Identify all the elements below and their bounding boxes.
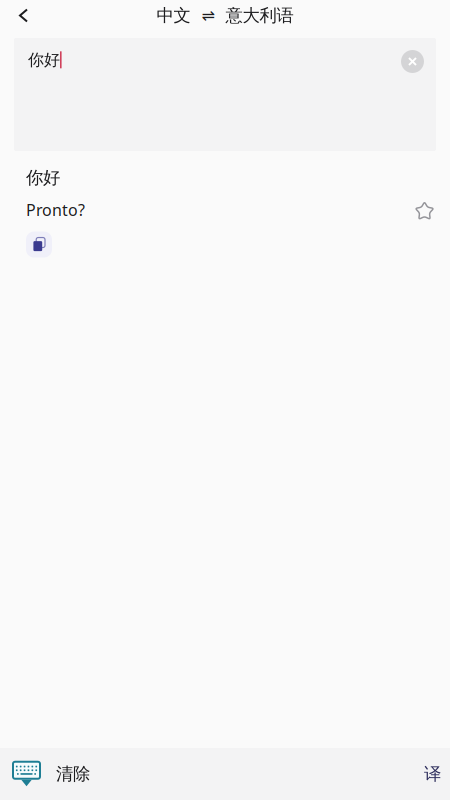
- staticText: 你好: [26, 167, 60, 188]
- staticText: ⇌: [201, 6, 214, 25]
- staticText: Pronto?: [26, 199, 85, 220]
- staticText: 中文: [156, 5, 190, 26]
- button[interactable]: Clear text: [401, 50, 424, 73]
- button[interactable]: Favourite: [413, 200, 436, 223]
- staticText: 意大利语: [225, 5, 293, 26]
- button[interactable]: 译: [408, 748, 450, 800]
- staticText: 清除: [56, 763, 90, 785]
- button[interactable]: Copy: [26, 231, 52, 257]
- staticText: 你好: [28, 50, 60, 70]
- button[interactable]: 中文: [156, 5, 293, 26]
- button[interactable]: Back: [0, 0, 47, 31]
- button[interactable]: 清除: [0, 748, 104, 800]
- staticText: 译: [424, 763, 441, 785]
